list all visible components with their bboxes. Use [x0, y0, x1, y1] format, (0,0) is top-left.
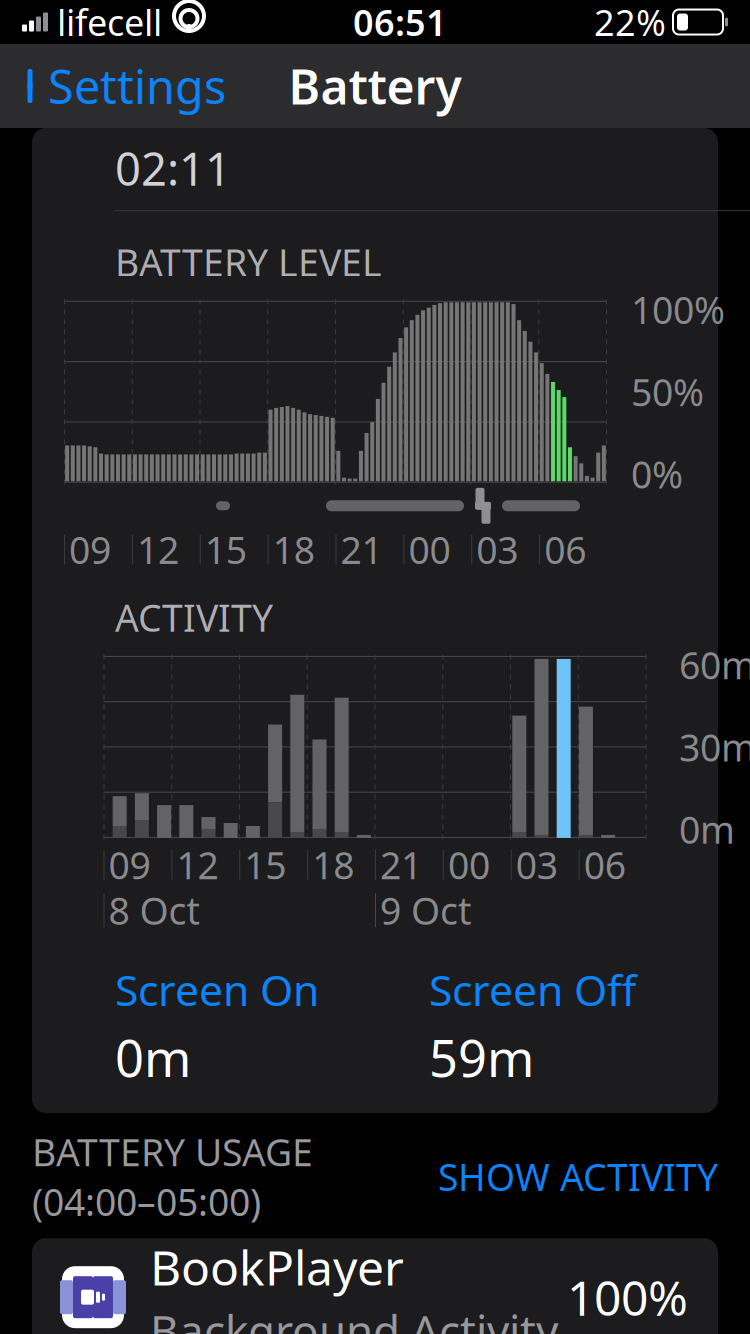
- staticText: Battery: [288, 54, 461, 118]
- staticText: Screen On: [115, 961, 319, 1018]
- button[interactable]: SHOW ACTIVITY: [438, 1146, 718, 1207]
- staticText: Screen Off: [429, 961, 636, 1018]
- staticText: 100%: [567, 1265, 688, 1329]
- staticText: 12: [137, 525, 179, 574]
- staticText: 22%: [594, 0, 666, 46]
- staticText: 12: [176, 840, 218, 889]
- staticText: 03: [476, 525, 518, 574]
- button[interactable]: BookPlayer: [32, 1238, 718, 1334]
- staticText: 03: [516, 840, 558, 889]
- staticText: 30m: [679, 722, 750, 772]
- staticText: 21: [340, 525, 382, 574]
- staticText: 8 Oct: [108, 885, 199, 935]
- staticText: 60m: [679, 640, 750, 689]
- staticText: BookPlayer: [150, 1235, 404, 1299]
- staticText: 02:11: [115, 138, 231, 198]
- staticText: BATTERY USAGE (04:00–05:00): [32, 1127, 313, 1226]
- staticText: lifecell: [57, 0, 162, 46]
- staticText: ACTIVITY: [115, 592, 273, 642]
- staticText: 18: [312, 840, 354, 889]
- staticText: 50%: [631, 367, 704, 417]
- staticText: 9 Oct: [380, 885, 471, 935]
- staticText: 06:51: [353, 0, 447, 46]
- staticText: 18: [273, 525, 315, 574]
- staticText: 0%: [631, 449, 683, 499]
- staticText: 06: [544, 525, 586, 574]
- staticText: BATTERY LEVEL: [115, 237, 382, 287]
- staticText: 0m: [679, 804, 735, 854]
- staticText: 00: [408, 525, 450, 574]
- staticText: SHOW ACTIVITY: [438, 1152, 718, 1201]
- staticText: 15: [205, 525, 247, 574]
- staticText: 59m: [429, 1024, 534, 1091]
- button[interactable]: Settings: [4, 45, 242, 127]
- staticText: 21: [380, 840, 422, 889]
- staticText: 15: [244, 840, 286, 889]
- staticText: Background Activity: [150, 1301, 558, 1334]
- staticText: 09: [69, 525, 111, 574]
- staticText: 00: [448, 840, 490, 889]
- staticText: 06: [584, 840, 626, 889]
- staticText: 0m: [115, 1024, 191, 1091]
- staticText: 100%: [631, 285, 725, 334]
- staticText: 09: [108, 840, 150, 889]
- staticText: Settings: [48, 55, 226, 117]
